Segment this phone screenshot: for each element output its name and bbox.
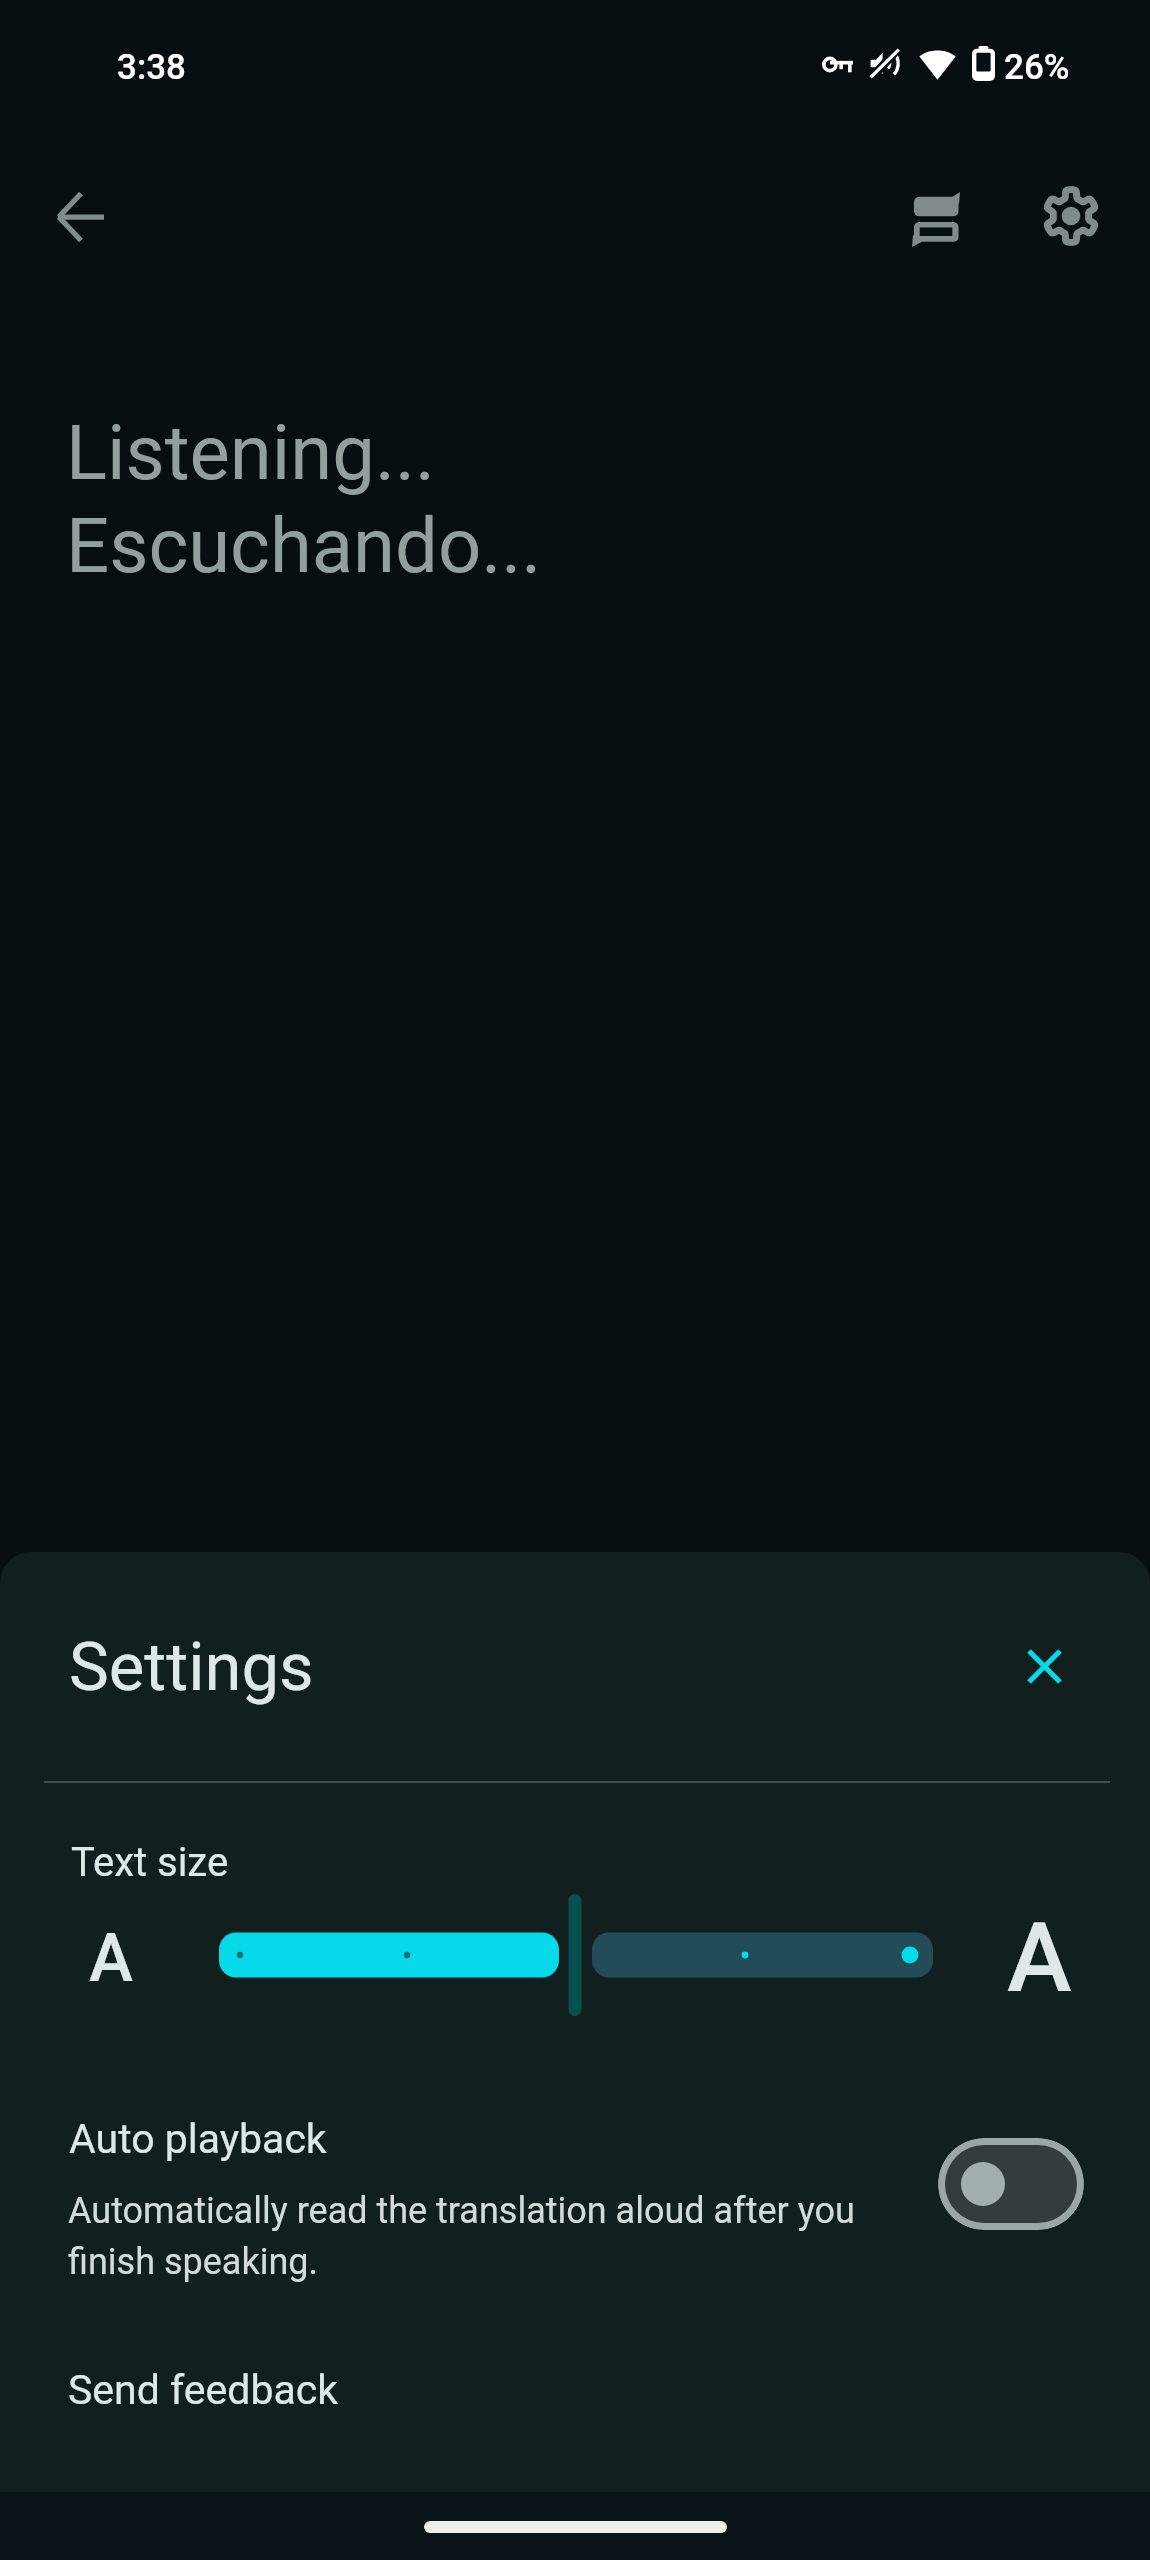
button[interactable]: Settings [1005,150,1137,282]
staticText: Listening... [66,408,436,497]
staticText: A [1007,1901,1072,2015]
staticText: Auto playback [69,2115,327,2163]
staticText: A [89,1920,133,1997]
staticText: Escuchando... [66,501,542,590]
staticText: 26% [1004,47,1070,88]
staticText: 3:38 [117,47,186,88]
button[interactable]: Auto playback toggle [938,2138,1084,2230]
staticText: Send feedback [68,2366,338,2414]
button[interactable]: Conversation mode [870,153,1002,285]
staticText: Automatically read the translation aloud… [68,2190,868,2283]
button[interactable]: Back [14,151,146,283]
button[interactable]: Text size slider [180,1885,970,2035]
staticText: Text size [71,1839,229,1886]
button[interactable]: Send feedback [0,2337,1150,2433]
staticText: Settings [69,1628,314,1707]
button[interactable]: Close [980,1602,1108,1730]
